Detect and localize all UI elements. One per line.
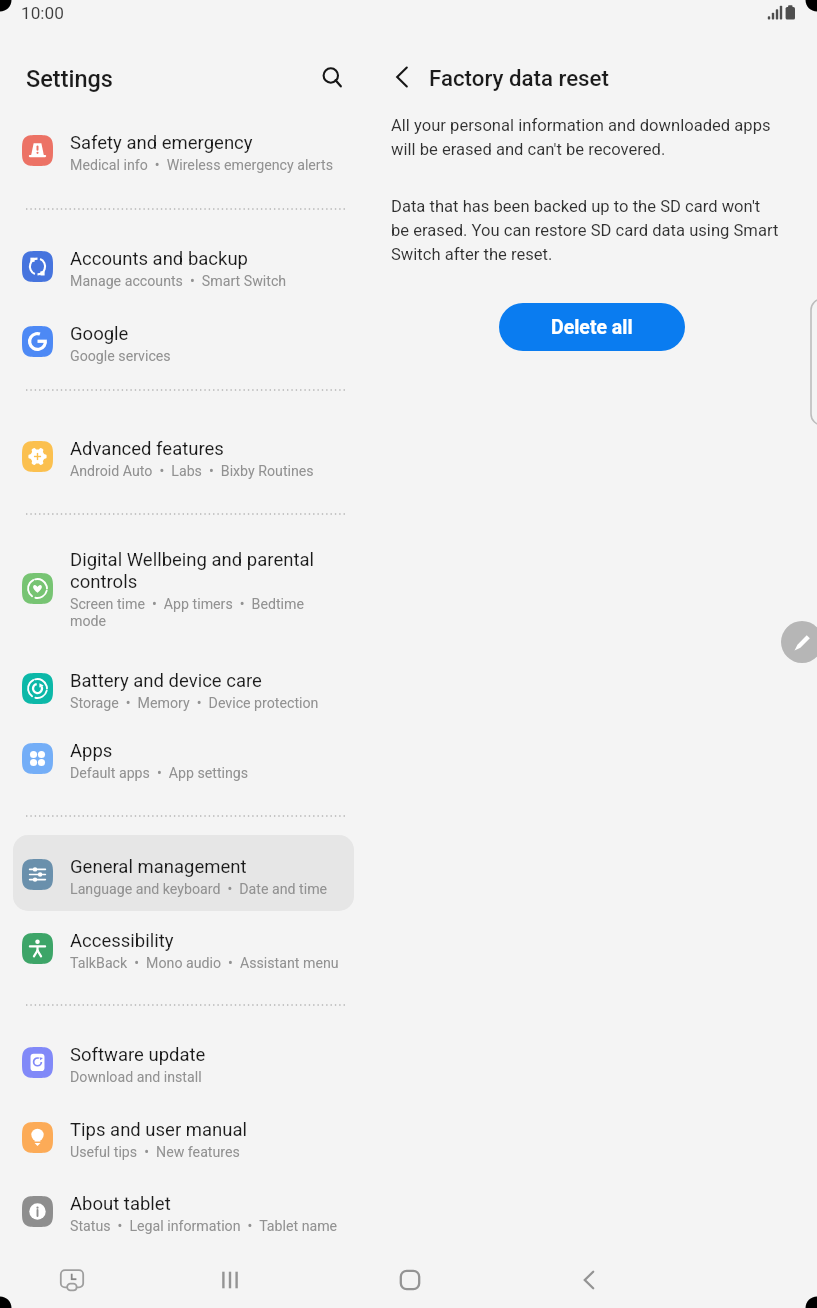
staticText: All your personal information and downlo… <box>391 112 771 160</box>
button[interactable]: Back <box>381 56 423 98</box>
staticText: About tablet <box>70 1193 370 1215</box>
staticText: Advanced features <box>70 438 370 460</box>
staticText: Google <box>70 323 370 345</box>
staticText: Accounts and backup <box>70 248 370 270</box>
staticText: Settings <box>26 65 113 93</box>
staticText: Status • Legal information • Tablet name <box>70 1218 370 1235</box>
staticText: Manage accounts • Smart Switch <box>70 273 370 290</box>
button[interactable] <box>14 1104 354 1172</box>
button[interactable] <box>14 725 354 793</box>
staticText: Digital Wellbeing and parental controls <box>70 549 322 593</box>
button[interactable] <box>14 841 354 909</box>
staticText: General management <box>70 856 370 878</box>
button[interactable] <box>14 117 354 185</box>
staticText: Delete all <box>551 316 633 339</box>
staticText: 10:00 <box>21 3 64 23</box>
staticText: Battery and device care <box>70 670 370 692</box>
staticText: Android Auto • Labs • Bixby Routines <box>70 463 370 480</box>
button[interactable] <box>14 423 354 491</box>
staticText: Screen time • App timers • Bedtime mode <box>70 596 322 630</box>
staticText: Data that has been backed up to the SD c… <box>391 193 779 265</box>
button[interactable]: Home <box>374 1255 446 1308</box>
button[interactable] <box>14 233 354 301</box>
staticText: Apps <box>70 740 370 762</box>
staticText: Google services <box>70 348 370 365</box>
staticText: Download and install <box>70 1069 370 1086</box>
staticText: Storage • Memory • Device protection <box>70 695 370 712</box>
staticText: Software update <box>70 1044 370 1066</box>
button[interactable] <box>14 915 354 983</box>
button[interactable]: Delete all <box>499 303 685 351</box>
staticText: Factory data reset <box>429 65 609 91</box>
staticText: Medical info • Wireless emergency alerts <box>70 157 370 174</box>
staticText: Tips and user manual <box>70 1119 370 1141</box>
button[interactable]: Edit <box>781 621 817 663</box>
staticText: Default apps • App settings <box>70 765 370 782</box>
staticText: Language and keyboard • Date and time <box>70 881 370 898</box>
staticText: Accessibility <box>70 930 370 952</box>
staticText: Useful tips • New features <box>70 1144 370 1161</box>
button[interactable]: Back <box>553 1255 625 1308</box>
button[interactable] <box>14 541 354 637</box>
button[interactable] <box>14 655 354 723</box>
button[interactable]: Screen timeout <box>36 1255 108 1308</box>
button[interactable]: Search <box>309 54 355 100</box>
staticText: TalkBack • Mono audio • Assistant menu <box>70 955 370 972</box>
button[interactable] <box>14 1178 354 1246</box>
button[interactable] <box>14 308 354 376</box>
button[interactable] <box>14 1029 354 1097</box>
staticText: Safety and emergency <box>70 132 370 154</box>
button[interactable]: Recents <box>194 1255 266 1308</box>
